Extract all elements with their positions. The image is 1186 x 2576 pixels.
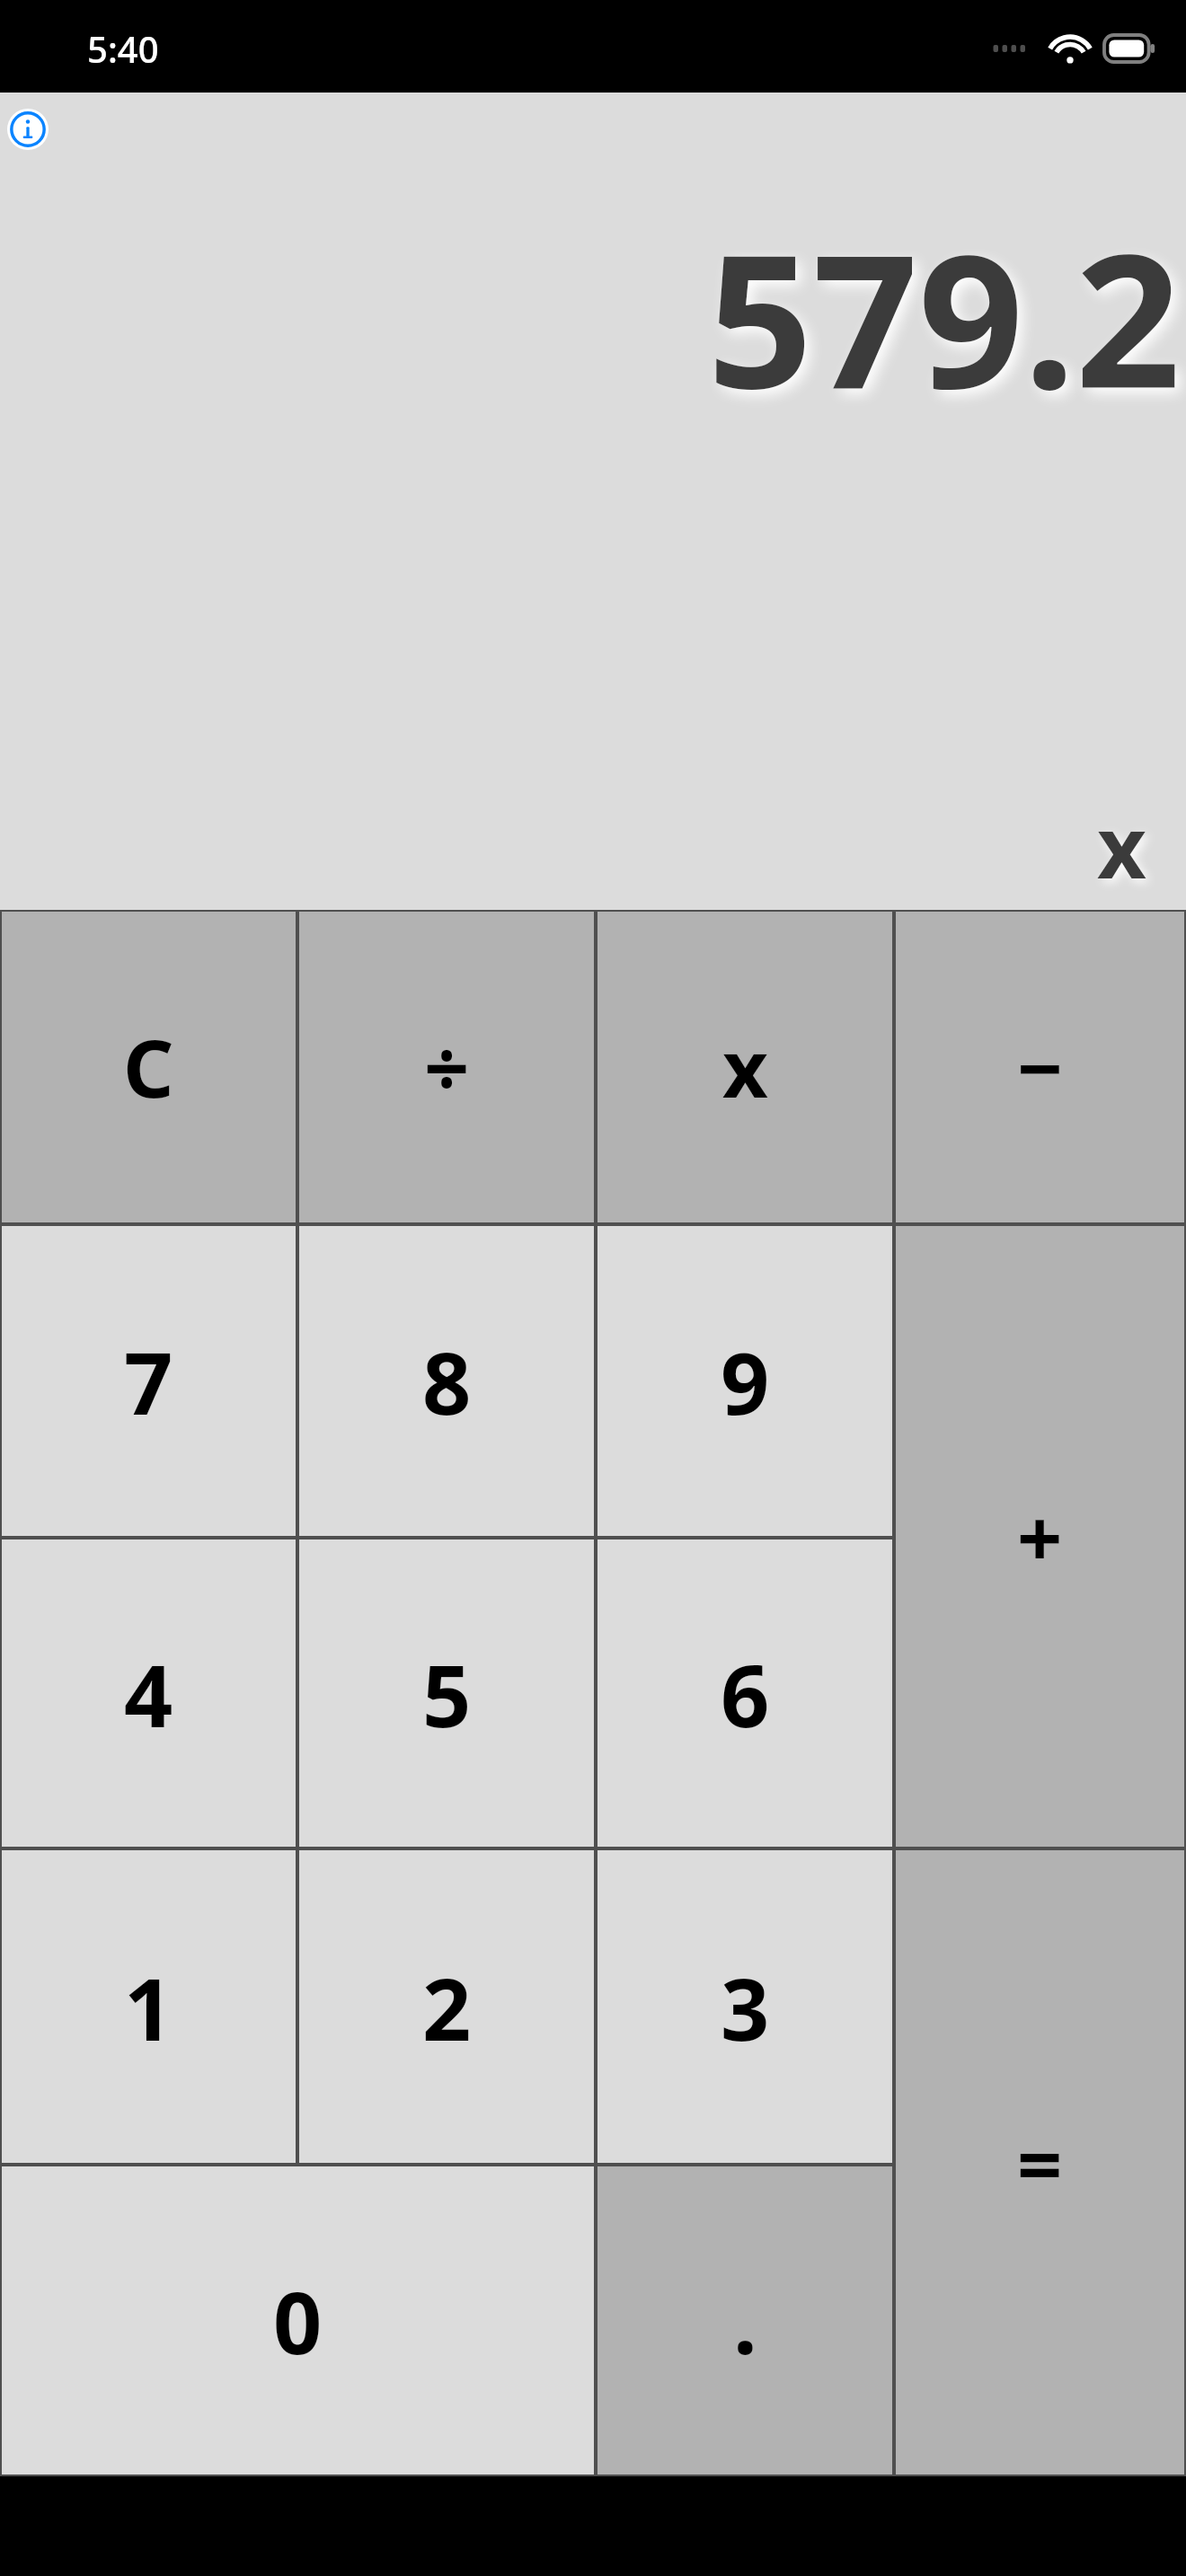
- staticText: 579.2: [707, 191, 1181, 442]
- button[interactable]: 0: [0, 2165, 596, 2476]
- staticText: +: [1017, 1483, 1063, 1591]
- button[interactable]: 8: [297, 1224, 596, 1538]
- staticText: 8: [422, 1323, 472, 1439]
- staticText: .: [733, 2263, 757, 2378]
- button[interactable]: 7: [0, 1224, 297, 1538]
- button[interactable]: .: [596, 2165, 894, 2476]
- staticText: 5: [422, 1636, 472, 1751]
- button[interactable]: 4: [0, 1538, 297, 1848]
- staticText: 1: [124, 1949, 173, 2065]
- staticText: 3: [721, 1949, 770, 2065]
- button[interactable]: Info: [7, 109, 49, 150]
- staticText: 5:40: [87, 24, 159, 73]
- staticText: =: [1017, 2109, 1063, 2217]
- button[interactable]: 6: [596, 1538, 894, 1848]
- staticText: 9: [721, 1323, 770, 1439]
- button[interactable]: 3: [596, 1848, 894, 2165]
- staticText: ÷: [424, 1013, 470, 1121]
- staticText: x: [722, 1013, 768, 1121]
- staticText: 0: [273, 2263, 323, 2378]
- button[interactable]: 2: [297, 1848, 596, 2165]
- button[interactable]: =: [894, 1848, 1186, 2476]
- staticText: x: [1097, 787, 1146, 903]
- button[interactable]: 9: [596, 1224, 894, 1538]
- staticText: 4: [124, 1636, 173, 1751]
- button[interactable]: −: [894, 910, 1186, 1224]
- button[interactable]: 5: [297, 1538, 596, 1848]
- button[interactable]: +: [894, 1224, 1186, 1848]
- button[interactable]: C: [0, 910, 297, 1224]
- staticText: 7: [124, 1323, 173, 1439]
- button[interactable]: x: [596, 910, 894, 1224]
- staticText: 2: [422, 1949, 472, 2065]
- button[interactable]: ÷: [297, 910, 596, 1224]
- staticText: −: [1017, 1013, 1064, 1121]
- button[interactable]: Backspace: [1067, 786, 1175, 903]
- staticText: 6: [721, 1636, 770, 1751]
- staticText: C: [123, 1013, 174, 1121]
- button[interactable]: 1: [0, 1848, 297, 2165]
